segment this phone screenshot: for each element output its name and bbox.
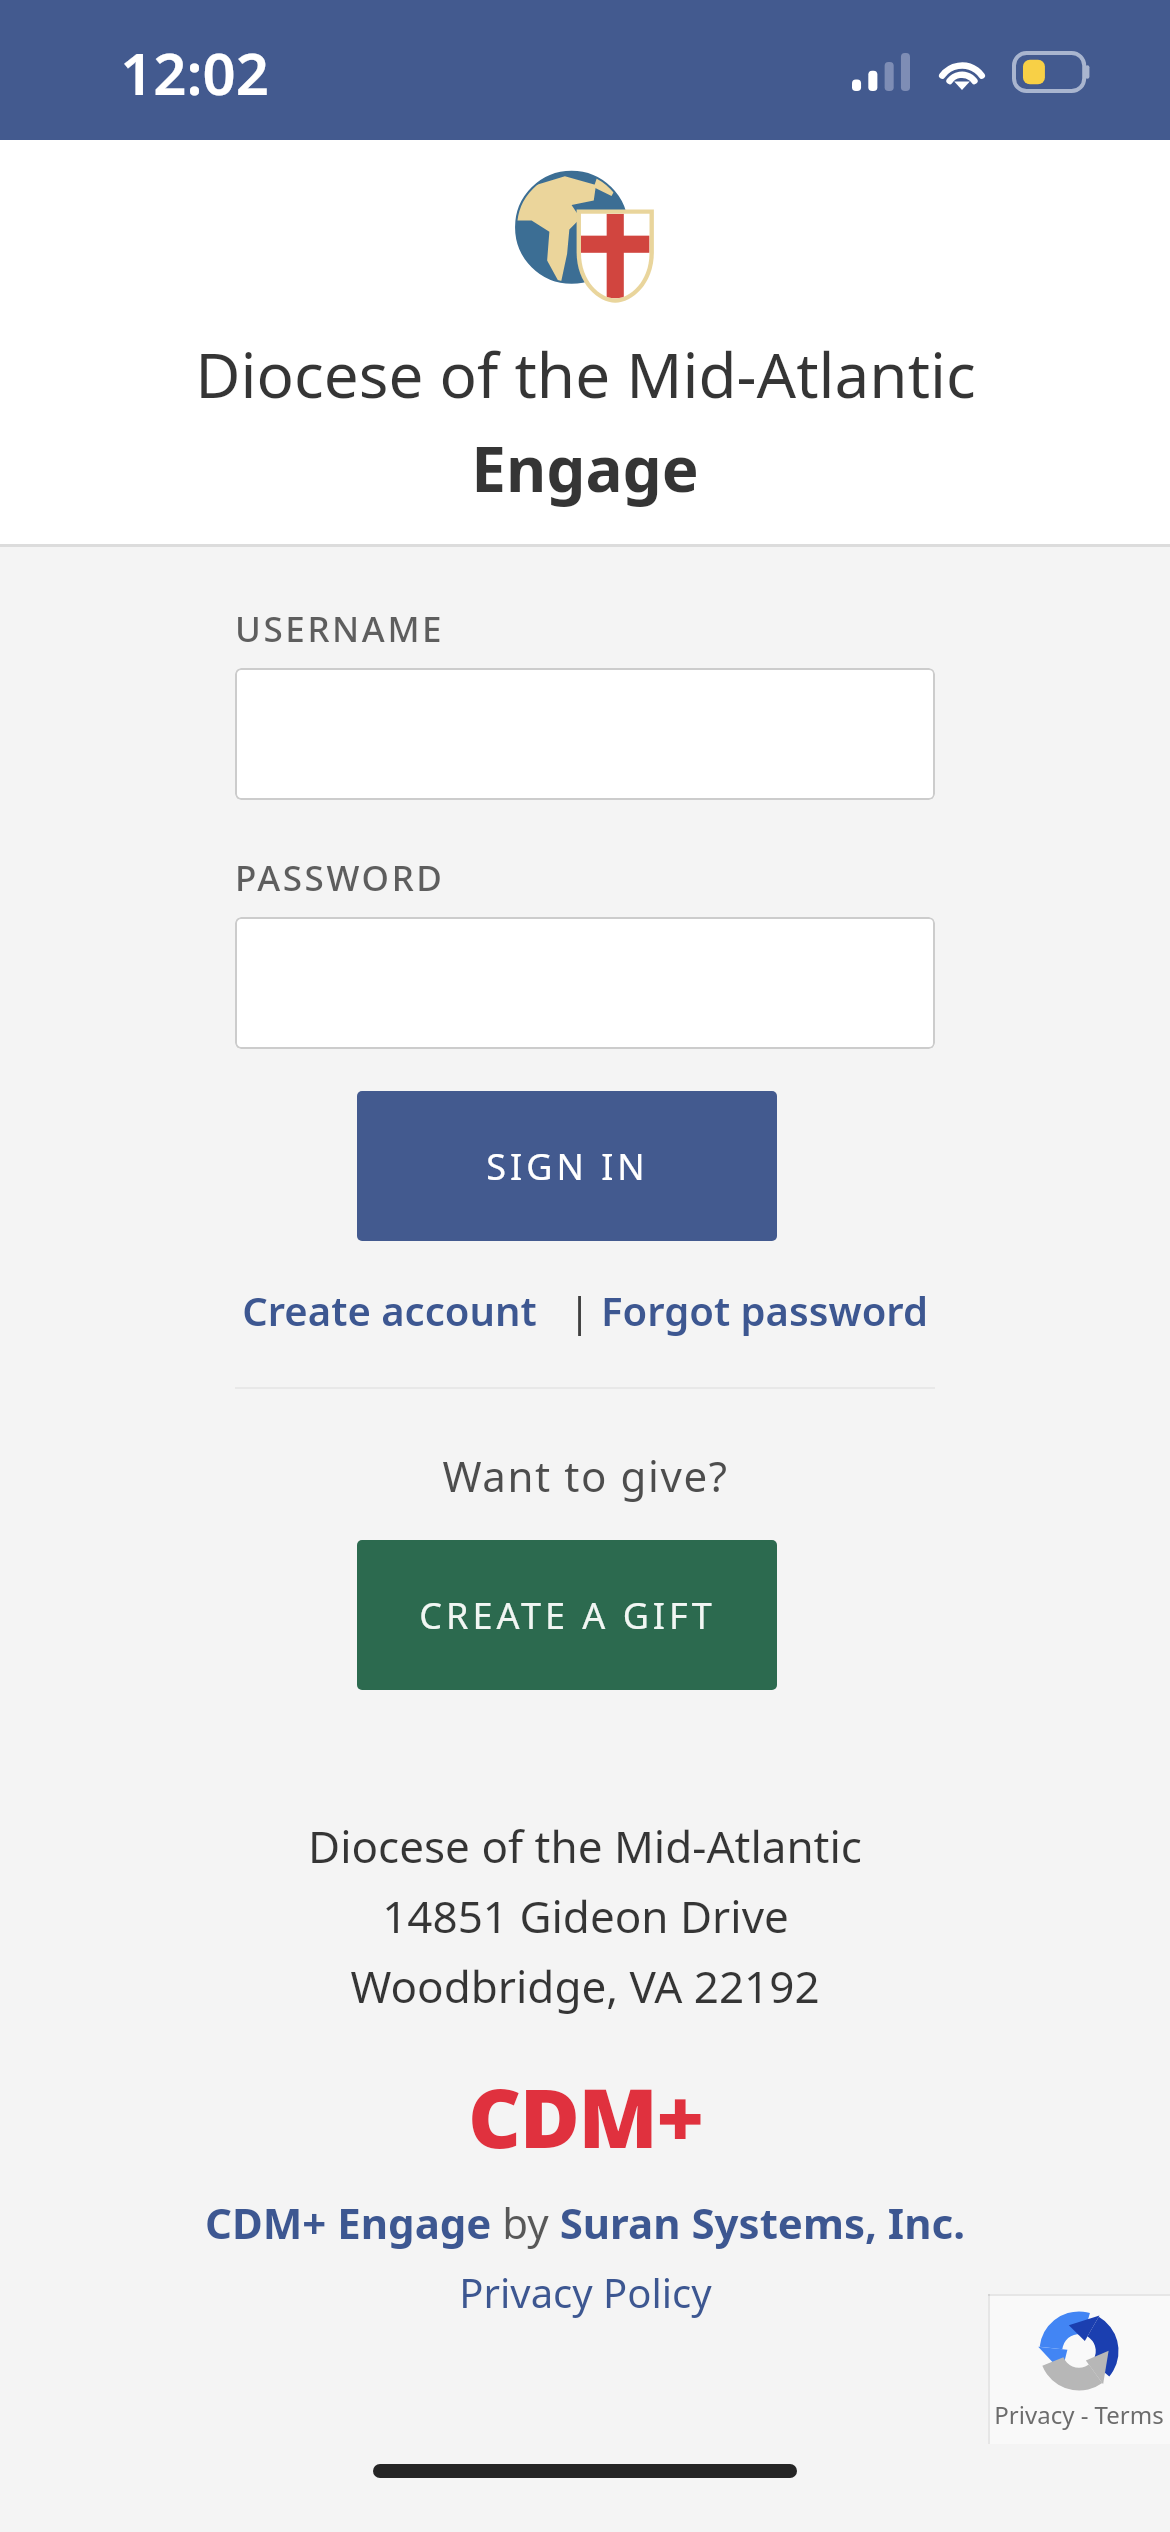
staticText: Create account — [242, 1283, 537, 1337]
staticText: Woodbridge, VA 22192 — [350, 1956, 820, 2016]
staticText: Engage — [471, 426, 699, 510]
staticText: Forgot password — [601, 1283, 928, 1337]
staticText: 12:02 — [120, 33, 269, 112]
staticText: CREATE A GIFT — [419, 1591, 716, 1640]
button[interactable]: Forgot password — [601, 1283, 928, 1337]
staticText: | — [537, 1283, 601, 1337]
staticText: PASSWORD — [235, 854, 445, 902]
staticText: Privacy Policy — [459, 2265, 712, 2319]
staticText: Diocese of the Mid-Atlantic — [195, 332, 976, 416]
button[interactable]: Privacy Policy — [451, 2265, 720, 2319]
button[interactable]: CREATE A GIFT — [357, 1540, 777, 1690]
button[interactable]: SIGN IN — [357, 1091, 777, 1241]
button[interactable]: reCAPTCHA Privacy and Terms — [988, 2294, 1170, 2444]
button[interactable]: Create account — [242, 1283, 537, 1337]
staticText: SIGN IN — [486, 1142, 649, 1191]
button[interactable] — [235, 917, 935, 1049]
staticText: 14851 Gideon Drive — [382, 1886, 789, 1946]
button[interactable] — [235, 668, 935, 800]
staticText: CDM+ — [468, 2060, 703, 2172]
staticText: Privacy - Terms — [994, 2398, 1164, 2431]
staticText: Diocese of the Mid-Atlantic — [308, 1816, 862, 1876]
staticText: USERNAME — [235, 605, 445, 653]
staticText: Want to give? — [442, 1447, 729, 1504]
staticText: CDM+ Engage by Suran Systems, Inc. — [205, 2194, 965, 2251]
